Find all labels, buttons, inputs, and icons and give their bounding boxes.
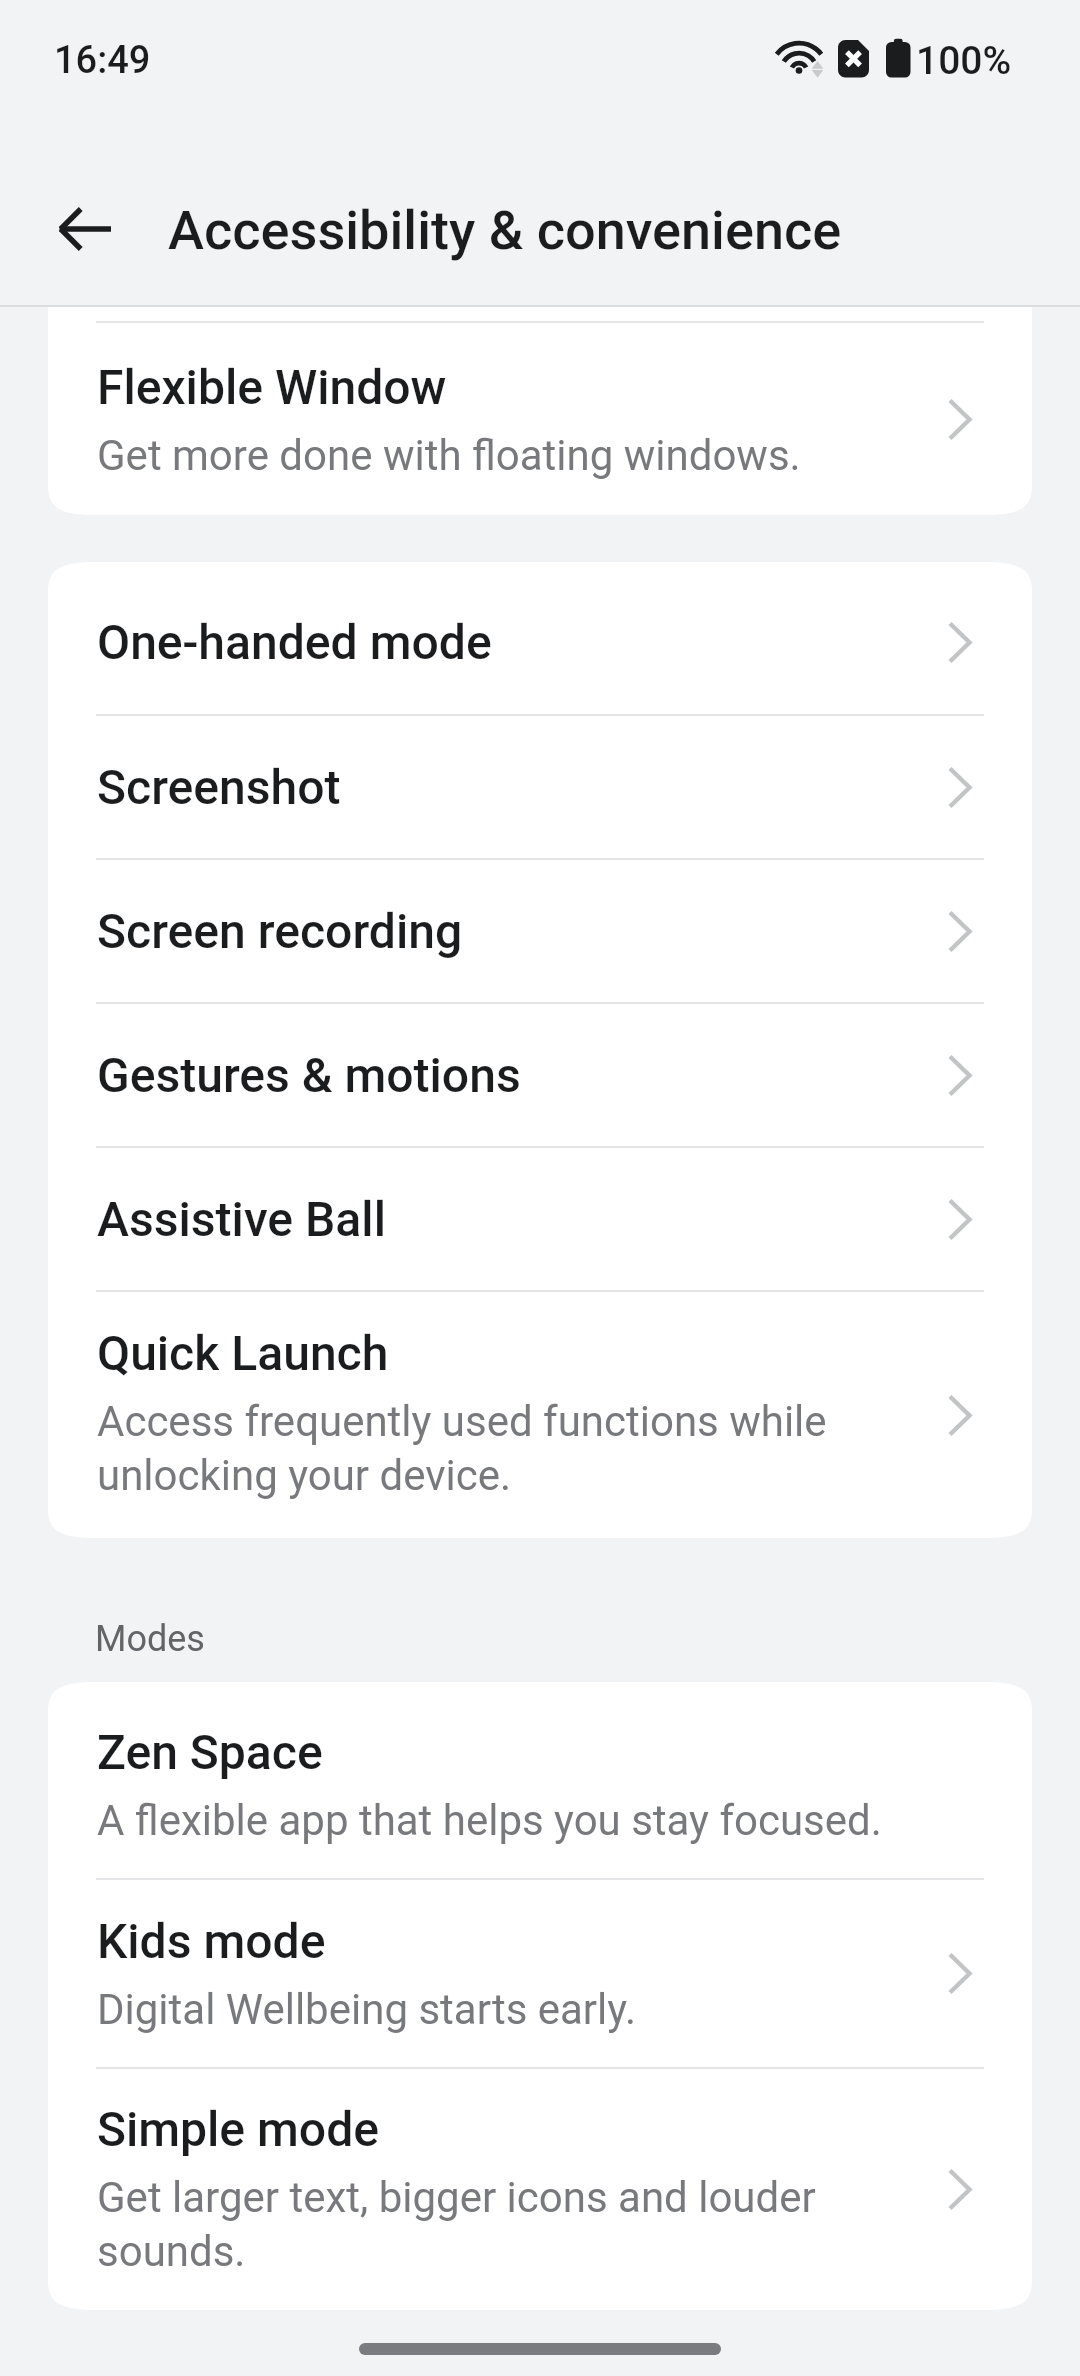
staticText: A flexible app that helps you stay focus… — [97, 1796, 882, 1845]
staticText: Screenshot — [97, 759, 341, 815]
button[interactable]: Assistive Ball — [48, 1148, 1032, 1290]
button[interactable]: Gestures & motions — [48, 1004, 1032, 1146]
button[interactable]: One-handed mode — [48, 570, 1032, 714]
button[interactable]: Flexible Window — [48, 323, 1032, 515]
button[interactable]: Kids mode — [48, 1880, 1032, 2067]
staticText: Flexible Window — [97, 359, 447, 415]
button[interactable]: Screenshot — [48, 716, 1032, 858]
button[interactable]: Zen Space — [48, 1690, 1032, 1878]
staticText: Modes — [95, 1618, 205, 1660]
staticText: One-handed mode — [97, 614, 492, 670]
staticText: Simple mode — [97, 2101, 380, 2157]
staticText: Zen Space — [97, 1724, 323, 1780]
staticText: 16:49 — [54, 38, 151, 83]
staticText: Quick Launch — [97, 1325, 389, 1381]
staticText: Get more done with floating windows. — [97, 431, 801, 480]
staticText: Assistive Ball — [97, 1191, 386, 1247]
button[interactable]: Quick Launch — [48, 1292, 1032, 1538]
button[interactable]: Screen recording — [48, 860, 1032, 1002]
button[interactable]: Back — [34, 179, 134, 279]
button[interactable]: Simple mode — [48, 2069, 1032, 2310]
staticText: Kids mode — [97, 1913, 326, 1969]
staticText: 100% — [916, 38, 1012, 84]
staticText: Gestures & motions — [97, 1047, 521, 1103]
staticText: Access frequently used functions while u… — [97, 1397, 927, 1500]
staticText: Accessibility & convenience — [168, 199, 842, 262]
staticText: Screen recording — [97, 903, 463, 959]
staticText: Digital Wellbeing starts early. — [97, 1985, 637, 2034]
staticText: Get larger text, bigger icons and louder… — [97, 2173, 927, 2276]
